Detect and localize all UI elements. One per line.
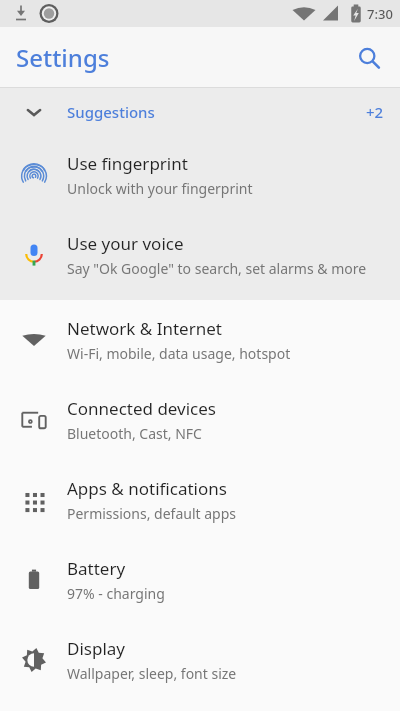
staticText: 97% - charging bbox=[67, 584, 165, 603]
staticText: Connected devices bbox=[67, 397, 217, 420]
staticText: Suggestions bbox=[67, 102, 155, 122]
staticText: Settings bbox=[16, 41, 110, 74]
button[interactable]: Connected devices bbox=[0, 380, 400, 460]
staticText: +2 bbox=[366, 102, 384, 122]
staticText: Battery bbox=[67, 557, 126, 580]
staticText: Wallpaper, sleep, font size bbox=[67, 664, 237, 683]
button[interactable]: Search bbox=[345, 34, 393, 82]
staticText: Wi-Fi, mobile, data usage, hotspot bbox=[67, 344, 291, 363]
button[interactable]: Display bbox=[0, 620, 400, 700]
button[interactable]: Battery bbox=[0, 540, 400, 620]
staticText: Display bbox=[67, 637, 125, 660]
staticText: Unlock with your fingerprint bbox=[67, 179, 253, 198]
staticText: Use fingerprint bbox=[67, 152, 188, 175]
staticText: Permissions, default apps bbox=[67, 504, 237, 523]
staticText: 7:30 bbox=[367, 5, 393, 23]
button[interactable]: Use your voice bbox=[0, 215, 400, 295]
button[interactable]: Network & Internet bbox=[0, 300, 400, 380]
staticText: Network & Internet bbox=[67, 317, 222, 340]
button[interactable]: Suggestions bbox=[0, 88, 400, 135]
staticText: Bluetooth, Cast, NFC bbox=[67, 424, 202, 443]
staticText: Say "Ok Google" to search, set alarms & … bbox=[67, 259, 367, 278]
button[interactable]: Apps & notifications bbox=[0, 460, 400, 540]
staticText: Use your voice bbox=[67, 232, 184, 255]
staticText: Apps & notifications bbox=[67, 477, 227, 500]
button[interactable]: Use fingerprint bbox=[0, 135, 400, 215]
